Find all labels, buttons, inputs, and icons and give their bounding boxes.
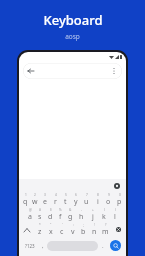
staticText: # bbox=[39, 208, 42, 212]
staticText: ' bbox=[62, 223, 63, 227]
button[interactable]: % bbox=[55, 207, 65, 222]
button[interactable]: : bbox=[67, 222, 78, 237]
staticText: b bbox=[81, 227, 86, 237]
button[interactable]: 1 bbox=[20, 192, 30, 207]
button[interactable]: More options bbox=[110, 67, 118, 75]
staticText: w bbox=[32, 197, 38, 207]
staticText: ? bbox=[105, 223, 107, 227]
staticText: p bbox=[117, 197, 122, 207]
button[interactable]: 0 bbox=[114, 192, 125, 207]
button[interactable]: & bbox=[65, 207, 76, 222]
staticText: 6 bbox=[75, 193, 77, 197]
staticText: ( bbox=[104, 208, 105, 212]
button[interactable]: , bbox=[38, 238, 47, 253]
staticText: : bbox=[73, 223, 74, 227]
staticText: 4 bbox=[55, 193, 57, 197]
button[interactable]: ' bbox=[56, 222, 67, 237]
staticText: v bbox=[71, 227, 75, 237]
staticText: 9 bbox=[108, 193, 110, 197]
staticText: r bbox=[54, 197, 57, 207]
staticText: a bbox=[28, 212, 32, 222]
staticText: i bbox=[97, 197, 99, 207]
button[interactable]: 9 bbox=[103, 192, 114, 207]
staticText: h bbox=[79, 212, 84, 222]
staticText: * bbox=[39, 223, 41, 227]
button[interactable]: ; bbox=[78, 222, 89, 237]
button[interactable]: Settings bbox=[112, 181, 122, 191]
staticText: q bbox=[23, 197, 28, 207]
button[interactable]: Back bbox=[23, 63, 122, 79]
button[interactable]: + bbox=[87, 207, 98, 222]
staticText: & bbox=[69, 208, 72, 212]
staticText: " bbox=[50, 223, 52, 227]
staticText: 8 bbox=[97, 193, 99, 197]
staticText: Keyboard bbox=[43, 11, 103, 29]
staticText: e bbox=[43, 197, 47, 207]
button[interactable]: 8 bbox=[92, 192, 103, 207]
staticText: ! bbox=[94, 223, 95, 227]
button[interactable]: @ bbox=[25, 207, 35, 222]
staticText: - bbox=[81, 208, 83, 212]
staticText: z bbox=[38, 227, 42, 237]
staticText: j bbox=[92, 212, 94, 222]
staticText: d bbox=[48, 212, 53, 222]
button[interactable]: 2 bbox=[30, 192, 40, 207]
button[interactable]: # bbox=[35, 207, 45, 222]
staticText: 2 bbox=[34, 193, 36, 197]
button[interactable]: Back bbox=[27, 67, 35, 75]
button[interactable]: Space bbox=[47, 241, 98, 251]
staticText: 7 bbox=[86, 193, 88, 197]
button[interactable]: Backspace bbox=[111, 222, 125, 237]
staticText: m bbox=[102, 227, 109, 237]
staticText: % bbox=[59, 208, 62, 212]
button[interactable]: Shift bbox=[20, 222, 34, 237]
staticText: 1 bbox=[25, 193, 27, 197]
staticText: 0 bbox=[119, 193, 121, 197]
staticText: o bbox=[106, 197, 111, 207]
button[interactable]: 5 bbox=[60, 192, 70, 207]
button[interactable]: $ bbox=[45, 207, 55, 222]
button[interactable]: ? bbox=[100, 222, 111, 237]
button[interactable]: ) bbox=[109, 207, 120, 222]
button[interactable]: 4 bbox=[50, 192, 60, 207]
button[interactable]: 3 bbox=[40, 192, 50, 207]
staticText: @ bbox=[29, 208, 32, 212]
staticText: u bbox=[84, 197, 89, 207]
staticText: ; bbox=[83, 223, 84, 227]
staticText: ) bbox=[115, 208, 116, 212]
staticText: s bbox=[38, 212, 42, 222]
staticText: 3 bbox=[44, 193, 46, 197]
button[interactable]: " bbox=[45, 222, 56, 237]
button[interactable]: Search bbox=[107, 238, 123, 253]
button[interactable]: . bbox=[98, 238, 107, 253]
button[interactable]: ( bbox=[98, 207, 109, 222]
staticText: $ bbox=[50, 208, 52, 212]
button[interactable]: 6 bbox=[70, 192, 81, 207]
staticText: c bbox=[60, 227, 64, 237]
staticText: k bbox=[102, 212, 106, 222]
staticText: + bbox=[92, 208, 94, 212]
button[interactable]: 7 bbox=[81, 192, 92, 207]
staticText: f bbox=[59, 212, 62, 222]
staticText: x bbox=[49, 227, 53, 237]
button[interactable]: - bbox=[76, 207, 87, 222]
button[interactable]: * bbox=[34, 222, 45, 237]
staticText: , bbox=[42, 242, 44, 250]
staticText: . bbox=[102, 242, 104, 250]
staticText: ?123 bbox=[25, 243, 35, 249]
button[interactable]: ! bbox=[89, 222, 100, 237]
staticText: l bbox=[114, 212, 116, 222]
staticText: g bbox=[68, 212, 73, 222]
staticText: n bbox=[92, 227, 97, 237]
button[interactable]: ?123 bbox=[22, 238, 38, 253]
staticText: aosp bbox=[65, 32, 80, 41]
staticText: y bbox=[74, 197, 78, 207]
staticText: t bbox=[64, 197, 67, 207]
staticText: 5 bbox=[65, 193, 67, 197]
